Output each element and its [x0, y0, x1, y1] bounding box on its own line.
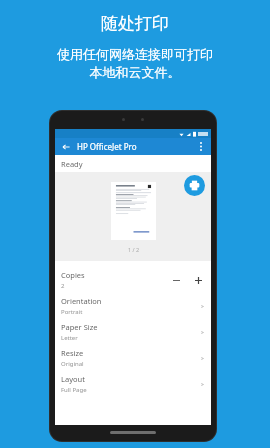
- staticText: Full Page: [61, 386, 87, 394]
- button[interactable]: Resize: [55, 345, 211, 371]
- button[interactable]: Copies: [55, 267, 211, 293]
- staticText: 使用任何网络连接即可打印 本地和云文件。: [57, 46, 213, 81]
- button[interactable]: Orientation: [55, 293, 211, 319]
- staticText: Portrait: [61, 308, 83, 316]
- button[interactable]: Back: [60, 141, 71, 152]
- staticText: 2: [61, 282, 65, 290]
- staticText: Ready: [61, 159, 83, 169]
- staticText: Layout: [61, 374, 85, 384]
- staticText: Orientation: [61, 296, 102, 306]
- staticText: Original: [61, 360, 84, 368]
- staticText: HP OfficeJet Pro: [77, 141, 137, 152]
- staticText: Letter: [61, 334, 78, 342]
- button[interactable]: Layout: [55, 371, 211, 397]
- button[interactable]: More options: [195, 141, 206, 152]
- button[interactable]: Print: [184, 175, 205, 196]
- button[interactable]: Paper Size: [55, 319, 211, 345]
- staticText: 1 / 2: [128, 246, 140, 253]
- staticText: Resize: [61, 348, 84, 358]
- staticText: Copies: [61, 270, 85, 280]
- staticText: 随处打印: [101, 13, 169, 34]
- button[interactable]: Increase copies: [191, 273, 205, 287]
- staticText: Paper Size: [61, 322, 98, 332]
- button[interactable]: Decrease copies: [169, 273, 183, 287]
